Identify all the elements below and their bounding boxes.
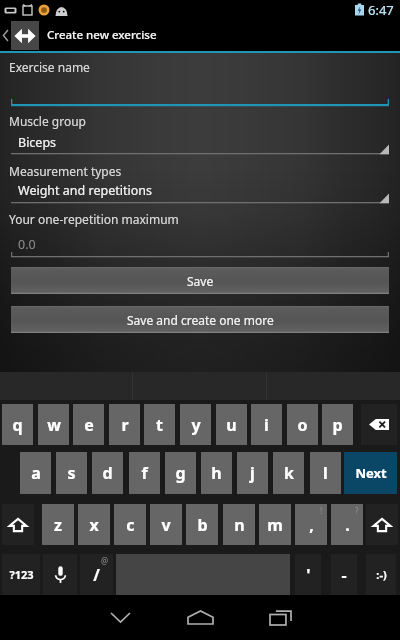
button[interactable]: Voice input [43,554,77,595]
button[interactable]: s [56,452,87,494]
staticText: t [156,414,163,436]
button[interactable]: j [237,452,268,494]
button[interactable]: a [20,452,51,494]
button[interactable]: e [73,404,104,445]
button[interactable]: z [42,504,74,545]
button[interactable]: Biceps [0,134,400,156]
button[interactable]: p [322,404,353,445]
staticText: d [102,462,113,484]
button[interactable]: u [216,404,247,445]
staticText: 0.0 [18,236,36,253]
button[interactable]: o [287,404,318,445]
other: Backspace [369,419,389,430]
button[interactable]: / [80,554,113,595]
staticText: c [126,514,135,536]
button[interactable]: y [180,404,211,445]
button[interactable]: w [38,404,69,445]
staticText: u [226,414,237,436]
staticText: Measurement types [9,163,122,179]
button[interactable]: Recent apps [240,595,320,640]
staticText: @ [101,555,109,566]
button[interactable]: k [273,452,304,494]
button[interactable]: l [310,452,341,494]
button[interactable]: Hide keyboard [80,595,160,640]
button[interactable]: h [201,452,232,494]
staticText: . [345,514,350,536]
staticText: b [197,514,208,536]
staticText: g [175,462,186,484]
button[interactable]: Backspace [361,404,397,445]
staticText: f [141,462,148,484]
staticText: n [234,514,245,536]
staticText: z [54,514,62,536]
staticText: Exercise name [9,59,90,75]
other: Shift [9,518,27,532]
button[interactable]: . [331,504,363,545]
button[interactable]: m [259,504,291,545]
button[interactable]: i [251,404,282,445]
staticText: - [341,564,347,586]
button[interactable]: :-) [366,554,396,595]
button[interactable]: n [223,504,255,545]
button[interactable]: v [150,504,182,545]
other: Shift [373,518,391,532]
staticText: ' [306,564,311,586]
button[interactable]: x [78,504,110,545]
staticText: , [309,514,314,536]
staticText: Your one-repetition maximum [9,211,179,227]
staticText: a [31,462,41,484]
staticText: Next [355,464,387,482]
staticText: 6:47 [368,1,394,19]
staticText: :-) [376,567,387,582]
button[interactable]: Save [11,267,389,294]
button[interactable]: ' [295,554,321,595]
button[interactable]: Shift [2,504,34,545]
staticText: Weight and repetitions [18,182,152,199]
button[interactable]: Weight and repetitions [0,182,400,204]
staticText: Create new exercise [47,27,157,43]
staticText: Muscle group [9,113,86,129]
button[interactable]: q [2,404,33,445]
staticText: / [93,564,100,586]
button[interactable]: Home [160,595,240,640]
button[interactable]: g [165,452,196,494]
staticText: ! [320,505,323,516]
button[interactable]: b [186,504,218,545]
staticText: x [89,514,99,536]
staticText: s [67,462,76,484]
button[interactable]: 0.0 [0,236,400,256]
staticText: r [121,414,129,436]
staticText: w [47,414,61,436]
button[interactable]: r [109,404,140,445]
other: Voice input [55,566,66,583]
staticText: o [297,414,308,436]
staticText: j [250,462,255,484]
button[interactable]: , [295,504,327,545]
staticText: m [267,514,283,536]
staticText: ?123 [9,567,34,582]
staticText: ? [355,505,359,516]
button[interactable]: f [129,452,160,494]
other: Navigate up [2,29,9,42]
staticText: Save and create one more [127,312,274,328]
button[interactable]: Shift [366,504,398,545]
staticText: l [323,462,328,484]
staticText: Biceps [18,134,57,151]
button[interactable]: d [92,452,123,494]
button[interactable]: Navigate up [0,19,400,51]
button[interactable]: Next [344,452,397,494]
button[interactable]: t [144,404,175,445]
staticText: k [284,462,294,484]
staticText: Save [187,273,214,289]
button[interactable]: ?123 [2,554,40,595]
staticText: y [191,414,201,436]
button[interactable]: Save and create one more [11,306,389,333]
staticText: h [211,462,222,484]
staticText: p [332,414,343,436]
button[interactable]: c [114,504,146,545]
button[interactable]: - [331,554,357,595]
